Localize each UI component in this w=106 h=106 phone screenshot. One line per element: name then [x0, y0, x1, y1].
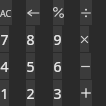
staticText: 4: [0, 57, 9, 76]
button[interactable]: Backspace: [26, 0, 40, 25]
button[interactable]: 8: [26, 26, 35, 52]
staticText: 1: [0, 84, 9, 103]
button[interactable]: 9: [53, 26, 62, 52]
button[interactable]: Plus: [80, 80, 92, 106]
button[interactable]: 4: [0, 53, 9, 79]
button[interactable]: Minus: [80, 53, 91, 79]
staticText: 2: [26, 84, 35, 103]
button[interactable]: All clear: [0, 0, 12, 25]
staticText: 6: [53, 57, 62, 76]
staticText: 8: [26, 30, 35, 49]
staticText: 7: [0, 30, 9, 49]
button[interactable]: 6: [53, 53, 62, 79]
staticText: 5: [26, 57, 35, 76]
staticText: 9: [53, 30, 62, 49]
button[interactable]: Percent: [53, 0, 64, 25]
button[interactable]: 7: [0, 26, 9, 52]
button[interactable]: Multiply: [80, 26, 89, 52]
button[interactable]: 5: [26, 53, 35, 79]
button[interactable]: 3: [53, 80, 62, 106]
button[interactable]: 1: [0, 80, 9, 106]
button[interactable]: Divide: [80, 0, 92, 25]
button[interactable]: 2: [26, 80, 35, 106]
staticText: AC: [0, 7, 12, 19]
staticText: 3: [53, 84, 62, 103]
